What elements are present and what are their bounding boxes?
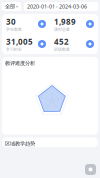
staticText: 学习时长 xyxy=(6,47,22,52)
staticText: 学生数量 xyxy=(6,27,22,32)
staticText: 1,989 xyxy=(54,16,76,27)
staticText: 31,005 xyxy=(6,36,33,47)
button[interactable]: 2020-01-01 - 2024-03-06 xyxy=(24,2,98,11)
button[interactable]: 全部 xyxy=(2,2,21,11)
staticText: 452 xyxy=(54,36,69,47)
staticText: 2020-01-01 - 2024-03-06 xyxy=(27,3,87,10)
staticText: 区域教学趋势 xyxy=(5,141,35,147)
button[interactable]: 31,005 xyxy=(2,34,50,54)
button[interactable]: 1,989 xyxy=(50,14,98,34)
staticText: 教评难度分析 xyxy=(5,60,35,67)
staticText: 30 xyxy=(6,16,16,27)
staticText: ▾ xyxy=(16,4,18,9)
button[interactable]: 30 xyxy=(2,14,50,34)
staticText: 课时总量 xyxy=(54,27,70,32)
staticText: 全部 xyxy=(5,3,15,10)
button[interactable]: Settings xyxy=(85,164,96,175)
staticText: 班级数量 xyxy=(54,47,70,52)
button[interactable]: 452 xyxy=(50,34,98,54)
